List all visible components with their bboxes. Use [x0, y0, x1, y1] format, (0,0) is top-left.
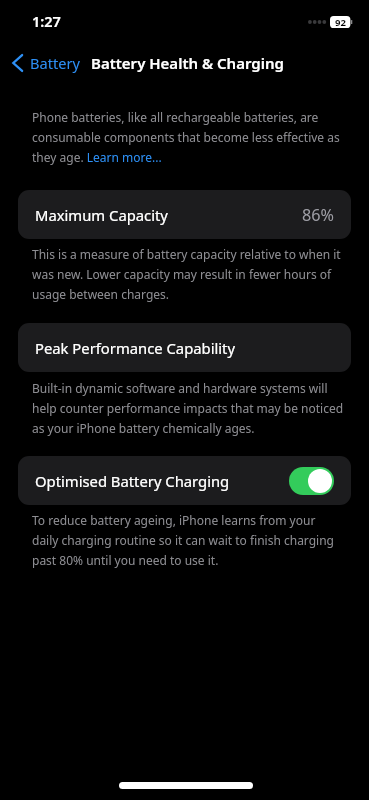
staticText: Optimised Battery Charging — [35, 471, 230, 491]
button[interactable]: Optimised Battery Charging, on — [289, 467, 334, 495]
other: Battery 92 percent — [330, 16, 352, 28]
staticText: This is a measure of battery capacity re… — [32, 243, 345, 303]
button[interactable]: Maximum Capacity — [18, 190, 351, 239]
button[interactable]: Back — [12, 44, 80, 82]
staticText: Peak Performance Capability — [35, 338, 235, 358]
staticText: Maximum Capacity — [35, 205, 168, 225]
staticText: Battery — [30, 53, 80, 73]
staticText: To reduce battery ageing, iPhone learns … — [32, 509, 337, 569]
staticText: Phone batteries, like all rechargeable b… — [32, 106, 345, 166]
other: Cellular signal — [308, 18, 328, 26]
staticText: 92 — [335, 16, 346, 28]
button[interactable]: Learn more about battery health — [32, 106, 345, 166]
staticText: 86% — [302, 204, 334, 226]
staticText: Built-in dynamic software and hardware s… — [32, 377, 345, 437]
other: Back — [12, 54, 23, 72]
staticText: Battery Health & Charging — [91, 53, 284, 73]
button[interactable]: Optimised Battery Charging — [18, 456, 351, 505]
staticText: 1:27 — [32, 11, 61, 31]
button[interactable]: Peak Performance Capability — [18, 323, 351, 372]
